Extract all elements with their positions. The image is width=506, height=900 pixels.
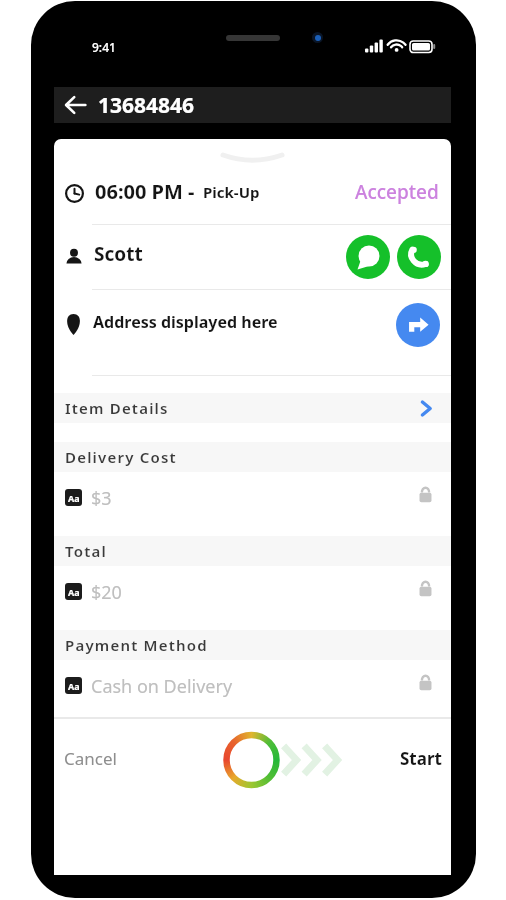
staticText: 13684846 — [98, 91, 195, 120]
staticText: Aa — [68, 586, 80, 598]
staticText: Item Details — [65, 398, 169, 418]
button[interactable]: Scott — [54, 225, 451, 289]
staticText: Payment Method — [65, 635, 208, 655]
staticText: Scott — [94, 241, 143, 267]
staticText: Delivery Cost — [65, 447, 177, 467]
button[interactable]: Aa — [54, 660, 451, 717]
button[interactable]: Start — [394, 741, 448, 776]
button[interactable]: Item Details — [54, 393, 451, 423]
button[interactable]: Call — [397, 235, 441, 279]
staticText: $20 — [91, 580, 122, 605]
staticText: Cancel — [64, 747, 117, 770]
staticText: Address displayed here — [93, 311, 278, 333]
staticText: Aa — [68, 492, 80, 504]
button[interactable]: Message — [346, 235, 390, 279]
button[interactable]: Aa — [54, 566, 451, 630]
button[interactable]: Cancel — [58, 741, 123, 776]
button[interactable]: Directions — [396, 303, 440, 347]
staticText: Pick-Up — [203, 182, 260, 202]
button[interactable]: Slide to start — [219, 728, 354, 792]
button[interactable]: Aa — [54, 472, 451, 536]
staticText: 9:41 — [92, 39, 116, 55]
button[interactable]: Back — [54, 87, 96, 123]
button[interactable]: Delivery Cost — [54, 442, 451, 472]
staticText: 06:00 PM - — [95, 178, 195, 205]
button[interactable]: Total — [54, 536, 451, 566]
staticText: Accepted — [355, 179, 439, 205]
staticText: Aa — [68, 680, 80, 692]
button[interactable]: Address displayed here — [54, 290, 451, 375]
staticText: Total — [65, 541, 107, 561]
button[interactable]: 06:00 PM - — [54, 163, 451, 224]
button[interactable]: Payment Method — [54, 630, 451, 660]
staticText: $3 — [91, 486, 112, 511]
staticText: Cash on Delivery — [91, 674, 233, 699]
staticText: Start — [400, 747, 442, 770]
